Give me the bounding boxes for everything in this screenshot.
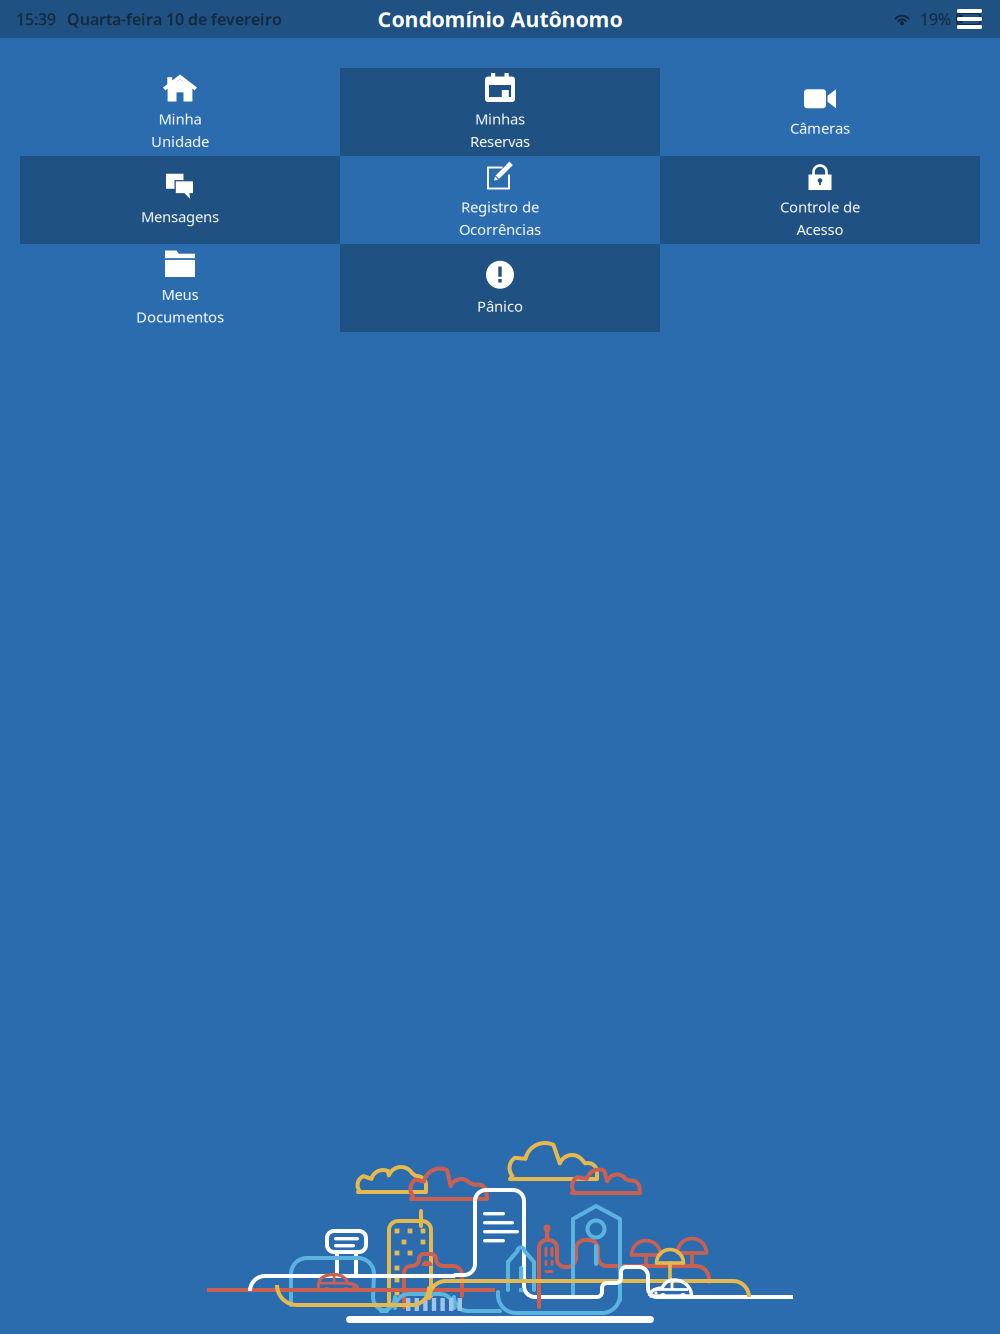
button[interactable]: Câmeras — [660, 68, 980, 156]
button[interactable]: Mensagens — [20, 156, 340, 244]
button[interactable]: Meus — [20, 244, 340, 332]
staticText: Câmeras — [790, 118, 850, 138]
staticText: Ocorrências — [459, 219, 541, 239]
button[interactable]: Registro de — [340, 156, 660, 244]
button[interactable]: Pânico — [340, 244, 660, 332]
staticText: Minha — [158, 109, 201, 128]
button[interactable]: Minhas — [340, 68, 660, 156]
button[interactable]: Controle de — [660, 156, 980, 244]
staticText: Meus — [161, 284, 198, 304]
staticText: Reservas — [470, 131, 530, 151]
staticText: Quarta-feira 10 de fevereiro — [67, 8, 282, 30]
staticText: Registro de — [461, 197, 539, 216]
staticText: Condomínio Autônomo — [377, 5, 622, 33]
button[interactable]: Minha — [20, 68, 340, 156]
staticText: Documentos — [136, 307, 224, 326]
staticText: 15:39 — [16, 8, 56, 30]
staticText: Acesso — [796, 219, 843, 239]
staticText: Controle de — [780, 197, 860, 216]
button[interactable]: Menu — [951, 3, 988, 35]
staticText: Pânico — [477, 296, 523, 316]
staticText: 19% — [920, 8, 951, 30]
staticText: Minhas — [475, 109, 525, 128]
staticText: Unidade — [151, 131, 209, 151]
staticText: Mensagens — [141, 207, 219, 226]
